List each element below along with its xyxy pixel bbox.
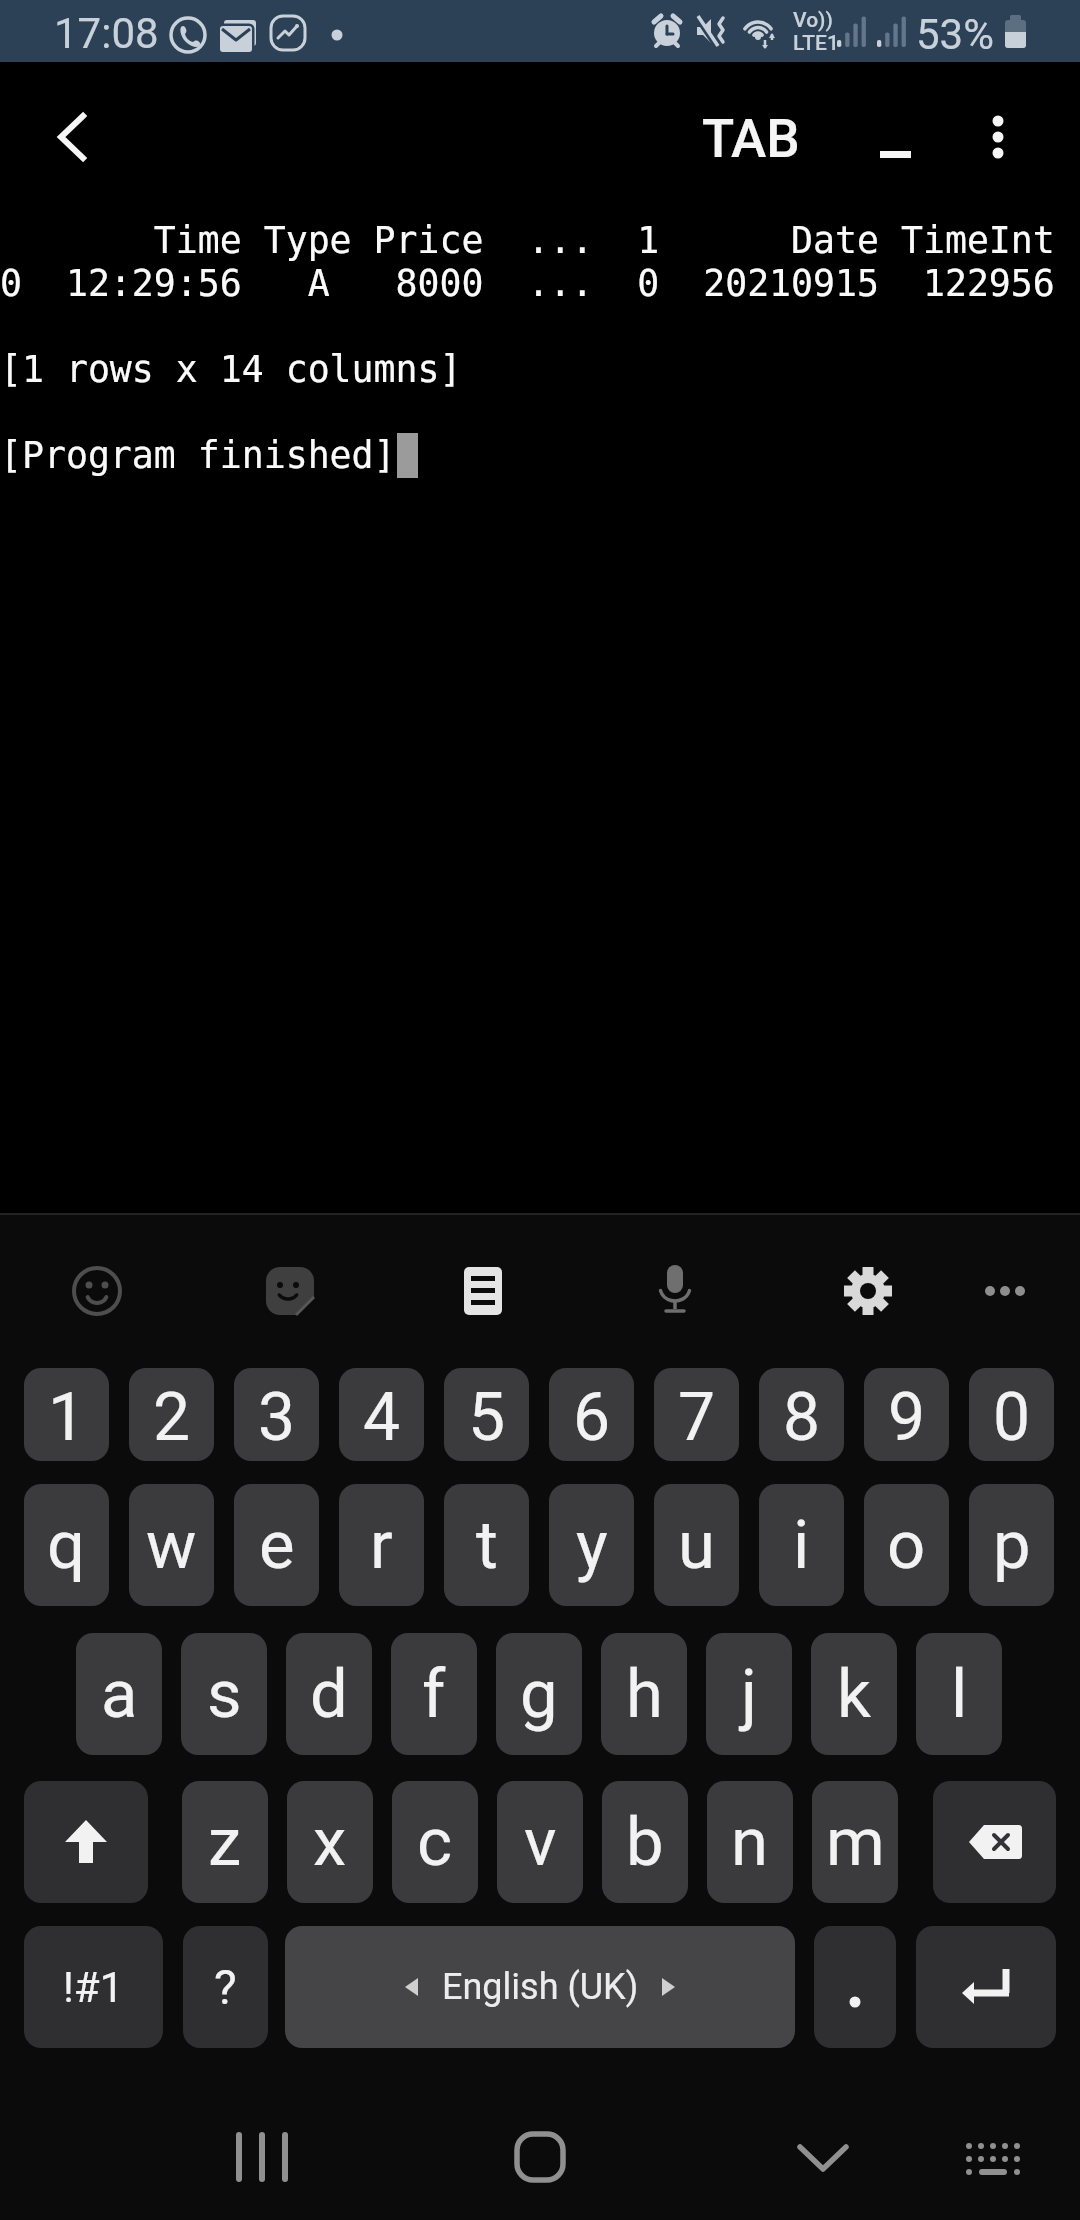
button[interactable]: x [287, 1781, 373, 1903]
staticText: q [47, 1506, 86, 1585]
button[interactable]: e [234, 1484, 319, 1606]
button[interactable]: !#1 [24, 1926, 163, 2048]
staticText: r [370, 1506, 393, 1585]
button[interactable]: n [707, 1781, 793, 1903]
staticText: 9 [888, 1379, 926, 1456]
button[interactable]: p [969, 1484, 1054, 1606]
button[interactable]: i [759, 1484, 844, 1606]
button[interactable]: English (UK) [285, 1926, 795, 2048]
button[interactable] [65, 1259, 129, 1323]
button[interactable]: 9 [864, 1368, 949, 1461]
button[interactable]: 7 [654, 1368, 739, 1461]
staticText: z [208, 1803, 242, 1882]
staticText: Vo)) [793, 8, 833, 33]
button[interactable] [258, 1259, 322, 1323]
staticText: 17:08 [54, 9, 159, 58]
staticText: a [101, 1655, 138, 1734]
button[interactable]: 5 [444, 1368, 529, 1461]
button[interactable]: o [864, 1484, 949, 1606]
button[interactable]: m [812, 1781, 898, 1903]
staticText: s [207, 1655, 242, 1734]
button[interactable] [814, 1926, 896, 2048]
staticText: 53% [916, 10, 994, 59]
button[interactable]: a [76, 1633, 162, 1755]
staticText: TAB [702, 108, 800, 170]
staticText: 3 [258, 1379, 296, 1456]
staticText: j [741, 1655, 758, 1734]
staticText: v [524, 1803, 557, 1882]
button[interactable]: h [601, 1633, 687, 1755]
button[interactable]: 4 [339, 1368, 424, 1461]
button[interactable]: u [654, 1484, 739, 1606]
button[interactable] [836, 1259, 900, 1323]
staticText: k [837, 1655, 871, 1734]
button[interactable]: q [24, 1484, 109, 1606]
button[interactable]: r [339, 1484, 424, 1606]
staticText: o [887, 1506, 926, 1585]
staticText: g [520, 1655, 558, 1734]
staticText: 0 [993, 1379, 1031, 1456]
staticText: 7 [678, 1379, 716, 1456]
staticText: ? [214, 1959, 237, 2015]
button[interactable]: f [391, 1633, 477, 1755]
button[interactable]: 0 [969, 1368, 1054, 1461]
button[interactable]: v [497, 1781, 583, 1903]
button[interactable] [643, 1259, 707, 1323]
button[interactable] [933, 1781, 1056, 1903]
staticText: y [576, 1506, 608, 1585]
staticText: t [476, 1506, 498, 1585]
staticText: English (UK) [442, 1966, 639, 2008]
staticText: 6 [573, 1379, 611, 1456]
button[interactable]: b [602, 1781, 688, 1903]
button[interactable]: t [444, 1484, 529, 1606]
staticText: p [993, 1506, 1031, 1585]
staticText: !#1 [63, 1963, 124, 2012]
button[interactable] [210, 2107, 310, 2207]
staticText: b [626, 1803, 664, 1882]
button[interactable]: 1 [24, 1368, 109, 1461]
button[interactable]: k [811, 1633, 897, 1755]
button[interactable]: s [181, 1633, 267, 1755]
button[interactable] [916, 1926, 1056, 2048]
button[interactable]: z [182, 1781, 268, 1903]
button[interactable]: l [916, 1633, 1002, 1755]
button[interactable]: ? [183, 1926, 268, 2048]
button[interactable]: w [129, 1484, 214, 1606]
staticText: 2 [153, 1379, 191, 1456]
button[interactable]: g [496, 1633, 582, 1755]
button[interactable] [973, 1259, 1037, 1323]
staticText: e [259, 1506, 295, 1585]
staticText: Time Type Price ... 1 Date TimeInt 0 12:… [0, 219, 1055, 477]
button[interactable]: c [392, 1781, 478, 1903]
staticText: 5 [468, 1379, 506, 1456]
staticText: 8 [783, 1379, 821, 1456]
button[interactable]: y [549, 1484, 634, 1606]
staticText: x [313, 1803, 347, 1882]
button[interactable] [490, 2107, 590, 2207]
staticText: n [731, 1803, 769, 1882]
button[interactable] [970, 105, 1026, 161]
staticText: l [951, 1655, 968, 1734]
button[interactable] [24, 1781, 148, 1903]
staticText: h [626, 1655, 663, 1734]
staticText: f [422, 1655, 446, 1734]
button[interactable] [451, 1259, 515, 1323]
staticText: m [826, 1803, 885, 1882]
staticText: i [793, 1506, 810, 1585]
button[interactable] [773, 2107, 873, 2207]
button[interactable]: d [286, 1633, 372, 1755]
button[interactable] [943, 2107, 1043, 2207]
staticText: LTE1 [793, 31, 839, 56]
button[interactable]: j [706, 1633, 792, 1755]
button[interactable]: 6 [549, 1368, 634, 1461]
staticText: 1 [48, 1379, 86, 1456]
button[interactable]: 8 [759, 1368, 844, 1461]
button[interactable]: 3 [234, 1368, 319, 1461]
button[interactable] [40, 105, 104, 169]
staticText: 4 [363, 1379, 401, 1456]
staticText: w [146, 1506, 197, 1585]
staticText: c [417, 1803, 453, 1882]
button[interactable]: 2 [129, 1368, 214, 1461]
button[interactable] [862, 120, 928, 186]
staticText: u [678, 1506, 715, 1585]
